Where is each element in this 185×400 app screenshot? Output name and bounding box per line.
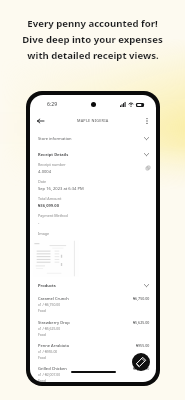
button[interactable]: Strawberry Drop	[30, 320, 156, 339]
staticText: x1 / ₦6,750.00	[38, 302, 61, 307]
staticText: ₦2,007.00	[133, 366, 150, 371]
staticText: -	[38, 220, 40, 226]
staticText: Dive deep into your expenses	[22, 33, 163, 46]
button[interactable]: Penne Arrabiata	[30, 343, 156, 362]
staticText: Food	[38, 355, 46, 360]
staticText: Penne Arrabiata	[38, 343, 69, 348]
button[interactable]: Receipt Details	[30, 150, 156, 159]
staticText: Store information	[38, 136, 72, 142]
button[interactable]: Edit receipt	[132, 353, 150, 371]
staticText: Food	[38, 308, 46, 313]
staticText: Food	[38, 378, 46, 382]
button[interactable]: Caramel Crunch	[30, 296, 156, 315]
staticText: Products	[38, 283, 56, 289]
button[interactable]: Copy receipt number	[143, 163, 152, 172]
staticText: ₦5,625.00	[133, 320, 150, 325]
staticText: Food	[38, 332, 46, 337]
staticText: Receipt number	[38, 162, 66, 167]
staticText: x1 / ₦2,007.00	[38, 372, 61, 377]
button[interactable]: Back	[33, 114, 47, 128]
staticText: x1 / ₦955.00	[38, 349, 58, 354]
staticText: Receipt Details	[38, 152, 69, 158]
button[interactable]: Products	[30, 281, 156, 290]
staticText: ₦36,099.00	[38, 203, 60, 209]
button[interactable]: Grilled Chicken	[30, 366, 156, 382]
staticText: 6:29	[47, 101, 58, 108]
staticText: Grilled Chicken	[38, 366, 67, 371]
staticText: Every penny accounted for!	[27, 17, 158, 30]
staticText: Total Amount	[38, 196, 62, 201]
staticText: ₦6,750.00	[133, 296, 150, 301]
staticText: ₦955.00	[136, 343, 150, 348]
staticText: Image	[38, 231, 50, 236]
staticText: with detailed receipt views.	[27, 49, 159, 62]
staticText: MAPLE NIGERIA	[77, 118, 109, 123]
staticText: 4-0004	[38, 169, 52, 175]
staticText: Strawberry Drop	[38, 320, 70, 325]
staticText: Caramel Crunch	[38, 296, 69, 301]
button[interactable]: Store information	[30, 134, 156, 143]
staticText: Sep 16, 2023 at 6:34 PM	[38, 186, 84, 192]
staticText: x1 / ₦5,625.00	[38, 326, 61, 331]
staticText: Date	[38, 179, 47, 184]
button[interactable]: More options	[141, 115, 153, 127]
staticText: Payment Method	[38, 213, 68, 218]
